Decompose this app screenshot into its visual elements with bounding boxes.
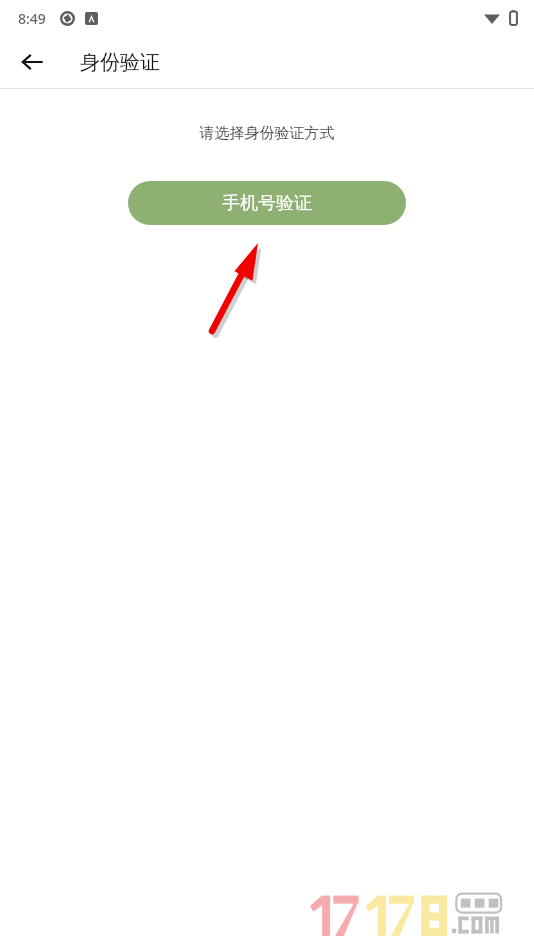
staticText: 请选择身份验证方式 — [0, 124, 534, 143]
staticText: 身份验证 — [80, 50, 160, 75]
staticText: 8:49 — [18, 9, 46, 28]
button[interactable]: 返回 — [10, 40, 54, 84]
button[interactable]: 手机号验证 — [128, 181, 406, 225]
staticText: 手机号验证 — [222, 192, 312, 215]
